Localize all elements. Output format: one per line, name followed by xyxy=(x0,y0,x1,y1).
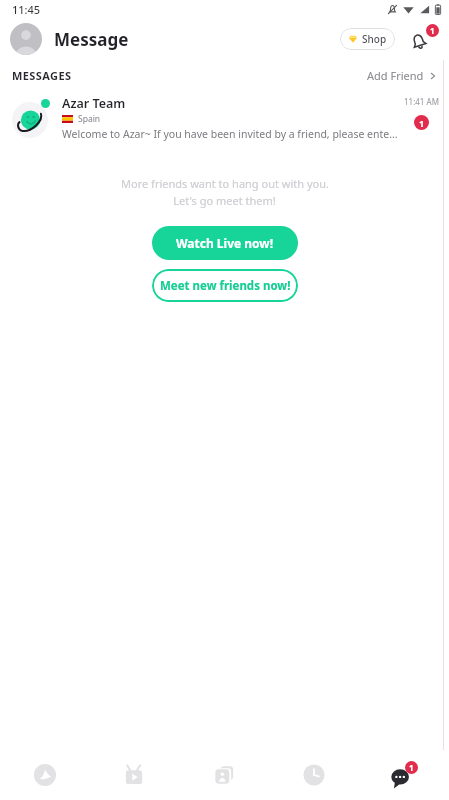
button[interactable]: Shop xyxy=(340,28,395,50)
staticText: MESSAGES xyxy=(12,68,72,83)
staticText: Add Friend xyxy=(367,68,424,83)
staticText: Welcome to Azar~ If you have been invite… xyxy=(62,127,398,141)
button[interactable]: Meet new friends now! xyxy=(152,269,298,302)
button[interactable]: Watch Live now! xyxy=(152,226,298,260)
staticText: Azar Team xyxy=(62,95,126,112)
button[interactable]: Chat xyxy=(359,750,449,800)
button[interactable]: Notifications xyxy=(409,24,439,54)
staticText: Spain xyxy=(78,113,101,125)
staticText: 11:45 xyxy=(12,2,41,17)
staticText: Meet new friends now! xyxy=(160,278,291,294)
button[interactable]: Azar Team xyxy=(0,90,449,146)
button[interactable]: Live xyxy=(89,750,179,800)
button[interactable]: Add Friend xyxy=(365,64,439,87)
staticText: Message xyxy=(54,28,129,51)
button[interactable]: Discover xyxy=(0,750,89,800)
staticText: Watch Live now! xyxy=(176,235,274,251)
staticText: Let's go meet them! xyxy=(173,193,276,208)
button[interactable]: Profile xyxy=(10,23,42,55)
staticText: 1 xyxy=(419,117,425,129)
button[interactable]: Friends xyxy=(179,750,269,800)
button[interactable]: History xyxy=(269,750,359,800)
staticText: Shop xyxy=(362,32,387,46)
staticText: 1 xyxy=(409,762,414,773)
staticText: More friends want to hang out with you. xyxy=(121,176,329,191)
staticText: 1 xyxy=(430,25,435,36)
staticText: 11:41 AM xyxy=(404,96,439,107)
